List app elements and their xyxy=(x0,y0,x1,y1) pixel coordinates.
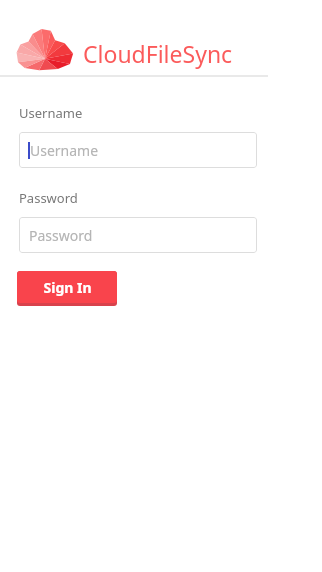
other: CloudFileSync logo xyxy=(16,27,74,71)
staticText: Sign In xyxy=(43,278,92,297)
button[interactable]: Sign In xyxy=(17,271,117,306)
staticText: Password xyxy=(19,189,78,207)
staticText: Password xyxy=(29,226,93,245)
button[interactable]: Password xyxy=(19,217,257,253)
button[interactable]: Username xyxy=(19,132,257,168)
staticText: CloudFileSync xyxy=(83,38,233,69)
staticText: Username xyxy=(19,104,83,122)
staticText: Username xyxy=(30,141,99,160)
